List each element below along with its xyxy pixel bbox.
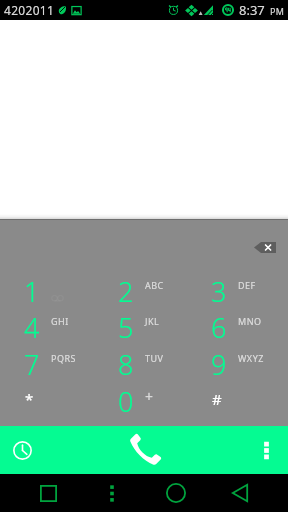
staticText: 8	[118, 346, 134, 382]
button[interactable]: More options	[253, 437, 279, 463]
staticText: JKL	[145, 315, 160, 327]
staticText: PM	[270, 5, 285, 17]
staticText: 8:37	[239, 1, 265, 19]
button[interactable]: 9	[187, 346, 281, 382]
staticText: *	[25, 389, 34, 409]
button[interactable]: 8	[94, 346, 188, 382]
staticText: 2	[118, 273, 134, 309]
button[interactable]: 1	[0, 273, 94, 309]
button[interactable]: Backspace	[254, 242, 276, 253]
button[interactable]: Recents	[30, 474, 66, 512]
staticText: 1	[24, 273, 40, 309]
staticText: DEF	[238, 279, 256, 291]
staticText: 4	[24, 309, 40, 345]
staticText: PQRS	[51, 352, 77, 364]
button[interactable]: 2	[94, 273, 188, 309]
staticText: 9	[211, 346, 227, 382]
staticText: WXYZ	[238, 352, 264, 364]
staticText: 4202011	[4, 2, 55, 18]
button[interactable]: 7	[0, 346, 94, 382]
staticText: 5	[118, 309, 134, 345]
staticText: GHI	[51, 315, 69, 327]
staticText: 3	[211, 273, 227, 309]
button[interactable]: Menu	[94, 474, 130, 512]
staticText: 7	[24, 346, 40, 382]
button[interactable]: 0	[94, 383, 188, 419]
button[interactable]: 4	[0, 309, 94, 345]
button[interactable]: #	[187, 383, 281, 419]
button[interactable]: Call history	[9, 437, 35, 463]
button[interactable]: Home	[158, 474, 194, 512]
staticText: #	[212, 389, 222, 409]
button[interactable]: Call	[120, 426, 168, 474]
staticText: 6	[211, 309, 227, 345]
button[interactable]: 6	[187, 309, 281, 345]
staticText: ABC	[145, 279, 164, 291]
button[interactable]: *	[0, 383, 94, 419]
button[interactable]: 3	[187, 273, 281, 309]
staticText: MNO	[238, 315, 262, 327]
button[interactable]: Back	[222, 474, 258, 512]
staticText: +	[145, 387, 154, 406]
staticText: TUV	[145, 352, 164, 364]
staticText: 0	[118, 383, 134, 419]
button[interactable]: 5	[94, 309, 188, 345]
